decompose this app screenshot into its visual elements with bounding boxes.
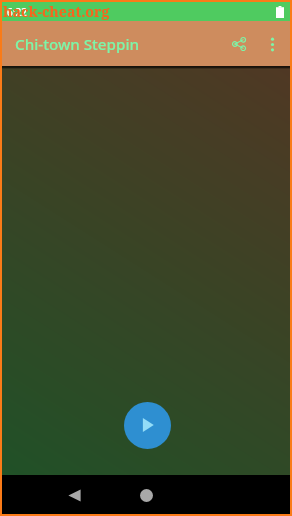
staticText: Chi-town Steppin bbox=[15, 34, 140, 55]
staticText: 6:22 bbox=[7, 5, 27, 19]
button[interactable]: Play bbox=[124, 402, 171, 449]
button[interactable]: Share bbox=[220, 26, 256, 62]
button[interactable]: Home bbox=[132, 481, 160, 509]
button[interactable]: More options bbox=[256, 28, 288, 60]
staticText: hack-cheat.org bbox=[3, 2, 110, 21]
button[interactable]: Video surface bbox=[2, 66, 290, 475]
button[interactable]: Back bbox=[60, 481, 88, 509]
